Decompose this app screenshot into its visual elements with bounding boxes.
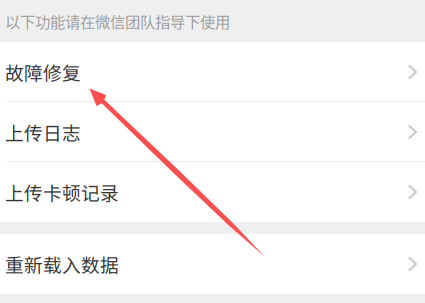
staticText: 故障修复 [5,58,81,85]
button[interactable]: 重新载入数据 [0,234,425,294]
staticText: 上传卡顿记录 [5,178,119,205]
staticText: 以下功能请在微信团队指导下使用 [5,10,230,32]
staticText: 上传日志 [5,118,81,145]
button[interactable]: 上传日志 [0,102,425,162]
staticText: 重新载入数据 [5,250,119,277]
button[interactable]: 上传卡顿记录 [0,162,425,222]
button[interactable]: 故障修复 [0,42,425,102]
